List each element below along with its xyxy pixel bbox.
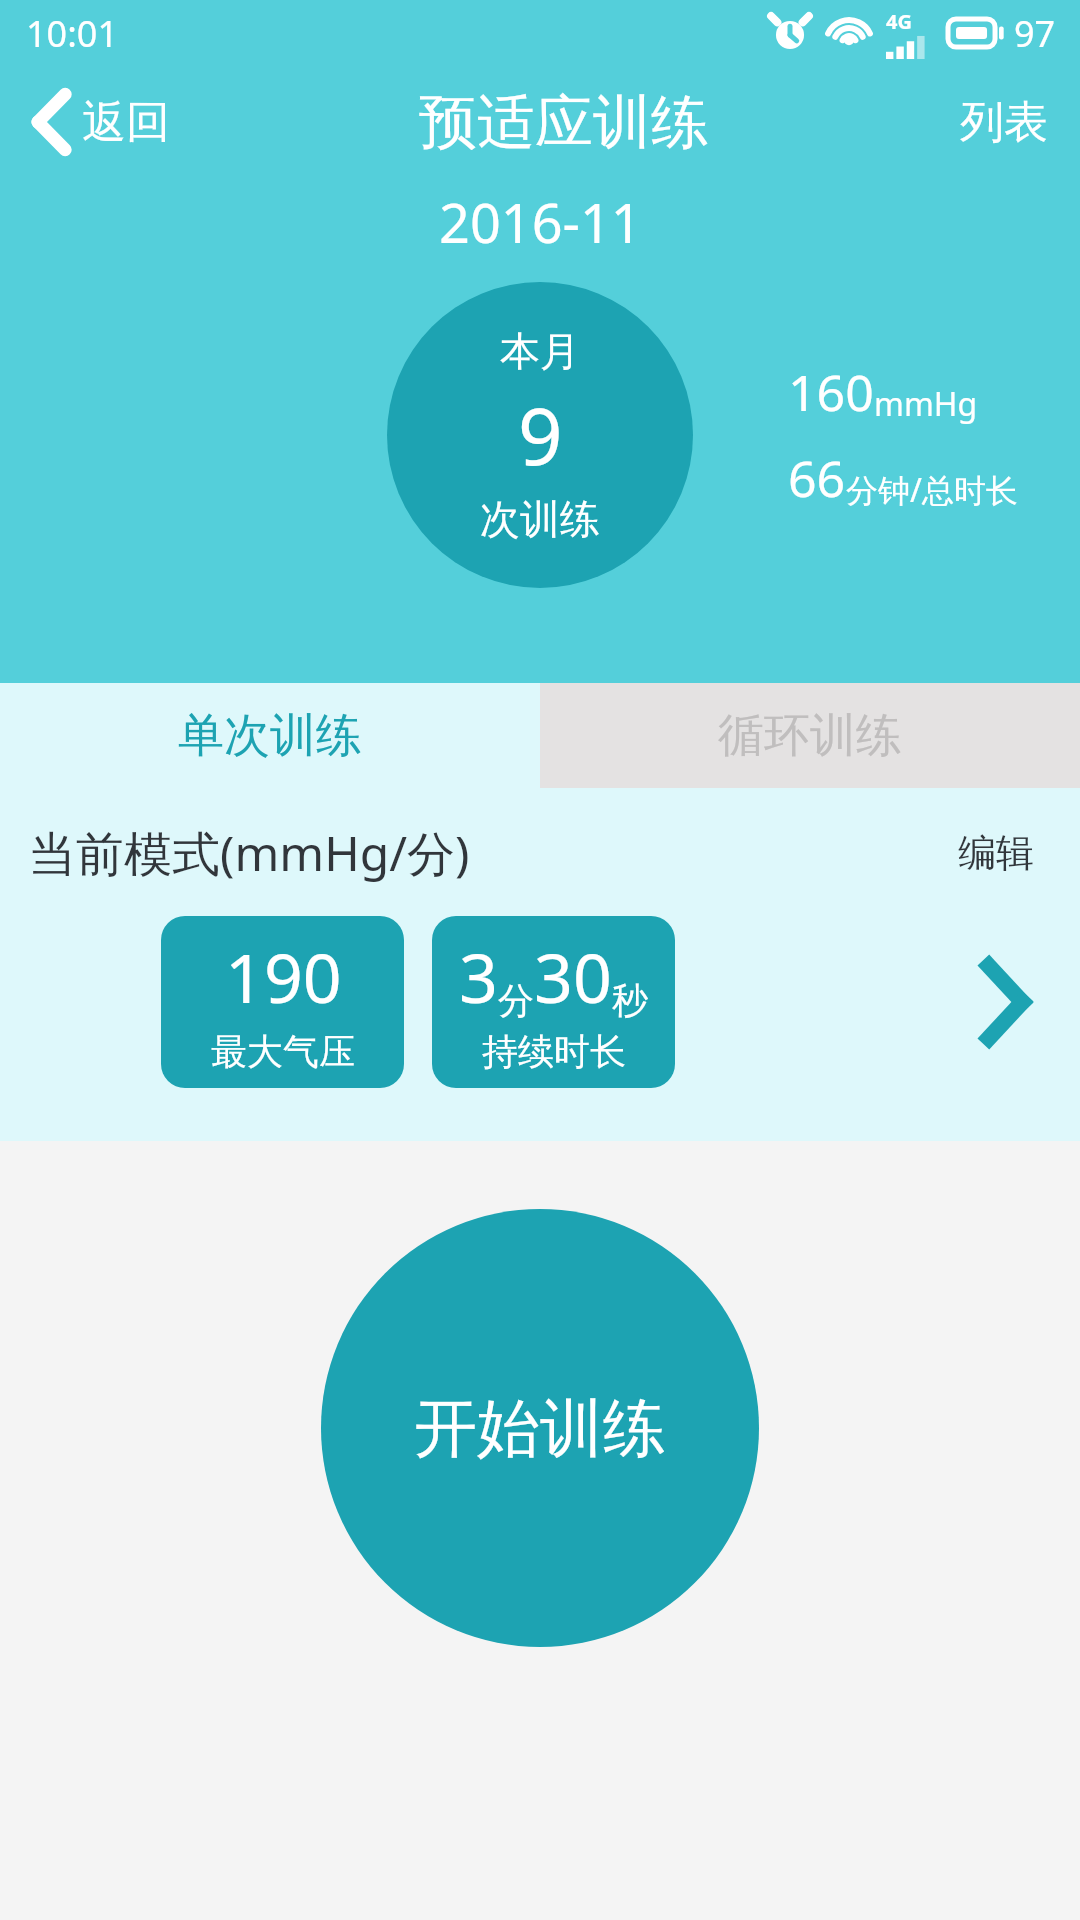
- staticText: 分: [498, 978, 534, 1023]
- staticText: 单次训练: [178, 707, 362, 765]
- staticText: 持续时长: [482, 1029, 626, 1074]
- button[interactable]: 循环训练: [540, 683, 1080, 788]
- staticText: 循环训练: [718, 707, 902, 765]
- staticText: 返回: [82, 95, 170, 150]
- staticText: 当前模式(mmHg/分): [28, 820, 470, 886]
- button[interactable]: 返回: [26, 81, 174, 163]
- staticText: 160: [788, 358, 874, 426]
- staticText: 列表: [960, 95, 1048, 150]
- staticText: 190: [225, 930, 342, 1023]
- staticText: 10:01: [26, 9, 119, 58]
- staticText: 3: [459, 930, 498, 1023]
- staticText: 预适应训练: [419, 86, 709, 159]
- staticText: 分钟/总时长: [846, 468, 1018, 512]
- button[interactable]: 单次训练: [0, 683, 540, 788]
- staticText: mmHg: [874, 382, 978, 426]
- staticText: 97: [1014, 9, 1056, 58]
- button[interactable]: 本月: [387, 282, 693, 588]
- button[interactable]: 3: [432, 916, 675, 1088]
- staticText: 开始训练: [414, 1389, 666, 1468]
- staticText: 最大气压: [211, 1029, 355, 1074]
- staticText: 66: [788, 444, 846, 512]
- staticText: 本月: [500, 326, 580, 376]
- staticText: 2016-11: [439, 185, 642, 259]
- staticText: 9: [518, 382, 563, 488]
- staticText: 编辑: [958, 829, 1034, 877]
- other: Alarm: [772, 15, 808, 51]
- button[interactable]: 列表: [954, 87, 1054, 158]
- staticText: 次训练: [480, 494, 600, 544]
- button[interactable]: 开始训练: [321, 1209, 759, 1647]
- staticText: 4G: [886, 8, 912, 35]
- button[interactable]: 编辑: [952, 823, 1040, 883]
- staticText: 秒: [612, 978, 648, 1023]
- button[interactable]: More mode settings: [950, 947, 1060, 1057]
- button[interactable]: 190: [161, 916, 404, 1088]
- staticText: 30: [534, 930, 612, 1023]
